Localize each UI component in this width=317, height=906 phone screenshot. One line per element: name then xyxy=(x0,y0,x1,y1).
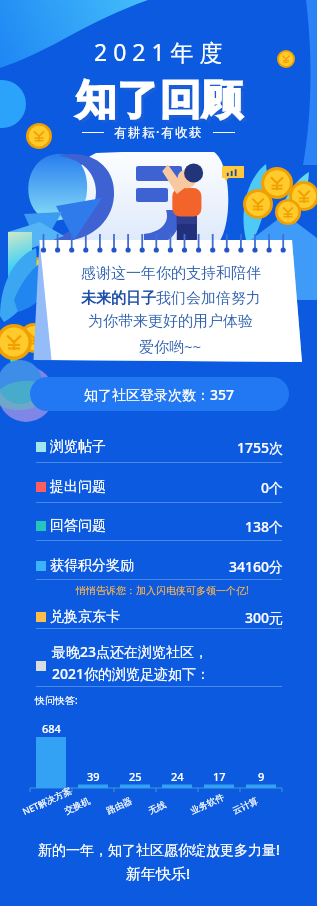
staticText: NET解决方案 xyxy=(20,784,73,817)
staticText: 新的一年，知了社区愿你绽放更多力量! xyxy=(38,840,280,859)
staticText: 悄悄告诉您：加入闪电侠可多领一个亿! xyxy=(76,583,249,597)
staticText: 138个 xyxy=(245,517,284,536)
staticText: 300元 xyxy=(245,608,284,627)
staticText: 感谢这一年你的支持和陪伴 xyxy=(81,264,261,283)
staticText: 0个 xyxy=(261,478,284,497)
staticText: 获得积分奖励 xyxy=(50,557,134,575)
staticText: 2021年度 xyxy=(94,36,229,67)
staticText: 17 xyxy=(213,769,226,784)
button[interactable]: 回答问题 xyxy=(36,515,284,537)
staticText: 兑换京东卡 xyxy=(50,608,120,626)
staticText: 为你带来更好的用户体验 xyxy=(88,312,253,331)
button[interactable]: 获得积分奖励 xyxy=(36,555,284,577)
staticText: 24 xyxy=(171,769,184,784)
staticText: 交换机 xyxy=(62,795,92,816)
button[interactable]: 知了社区登录次数：357 xyxy=(30,377,289,411)
staticText: 知了社区登录次数：357 xyxy=(84,385,235,404)
staticText: 我们会加倍努力 xyxy=(156,289,261,308)
staticText: 有耕耘·有收获 xyxy=(114,124,203,141)
staticText: 快问快答: xyxy=(35,693,78,707)
staticText: 未来的日子 xyxy=(81,289,156,308)
button[interactable]: 最晚23点还在浏览社区， xyxy=(36,642,284,682)
staticText: 提出问题 xyxy=(50,478,106,496)
staticText: 新年快乐! xyxy=(126,863,191,883)
staticText: 1755次 xyxy=(237,438,284,457)
staticText: 34160分 xyxy=(229,557,284,576)
staticText: 无线 xyxy=(146,799,167,816)
staticText: 知了回顾 xyxy=(78,78,246,130)
staticText: 684 xyxy=(42,721,61,736)
staticText: 知了回顾 xyxy=(75,75,243,127)
staticText: 9 xyxy=(258,769,265,784)
staticText: 最晚23点还在浏览社区， xyxy=(52,642,209,661)
staticText: 25 xyxy=(129,769,142,784)
button[interactable]: 提出问题 xyxy=(36,476,284,498)
button[interactable]: 浏览帖子 xyxy=(36,436,284,458)
staticText: 云计算 xyxy=(230,795,260,816)
staticText: 爱你哟~~ xyxy=(139,336,202,356)
staticText: 回答问题 xyxy=(50,517,106,535)
staticText: 39 xyxy=(87,769,100,784)
staticText: 2021你的浏览足迹如下： xyxy=(52,664,211,682)
staticText: 业务软件 xyxy=(188,791,226,816)
staticText: 浏览帖子 xyxy=(50,438,106,456)
button[interactable]: 兑换京东卡 xyxy=(36,606,284,628)
staticText: 路由器 xyxy=(104,795,134,816)
